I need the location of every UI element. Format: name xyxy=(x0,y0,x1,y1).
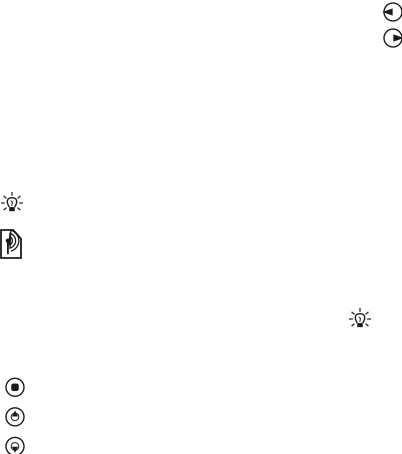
button[interactable]: Next answer xyxy=(276,26,402,49)
button[interactable]: Move down xyxy=(6,433,402,454)
button[interactable]: Show me more ideas xyxy=(117,304,402,334)
button[interactable]: Record a voice memo xyxy=(6,374,402,401)
button[interactable]: Move up xyxy=(6,404,402,430)
button[interactable]: Previous answer xyxy=(245,0,402,23)
